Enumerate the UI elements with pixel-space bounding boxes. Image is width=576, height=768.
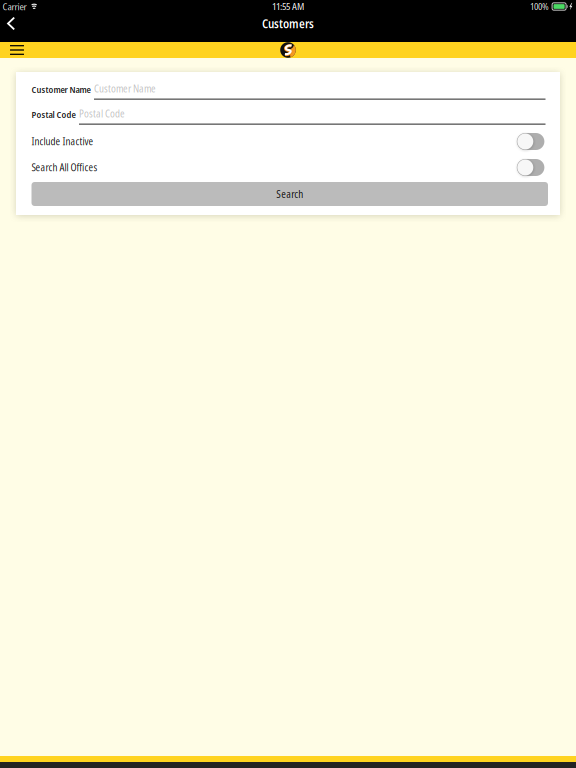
staticText: Include Inactive — [31, 135, 93, 148]
staticText: Postal Code — [31, 108, 75, 121]
button[interactable]: Include Inactive — [517, 133, 544, 150]
button[interactable]: Back — [0, 13, 38, 34]
staticText: 100% — [530, 0, 549, 13]
staticText: Customer Name — [94, 82, 156, 95]
button[interactable]: Search — [31, 182, 548, 206]
button[interactable]: Search All Offices — [517, 159, 544, 176]
staticText: 11:55 AM — [272, 0, 304, 13]
staticText: Postal Code — [79, 107, 125, 120]
staticText: Customers — [262, 15, 314, 32]
staticText: Carrier — [3, 0, 27, 13]
staticText: Search — [276, 187, 303, 201]
staticText: Customer Name — [31, 83, 90, 96]
staticText: Search All Offices — [31, 161, 97, 174]
button[interactable]: Menu — [0, 42, 44, 58]
